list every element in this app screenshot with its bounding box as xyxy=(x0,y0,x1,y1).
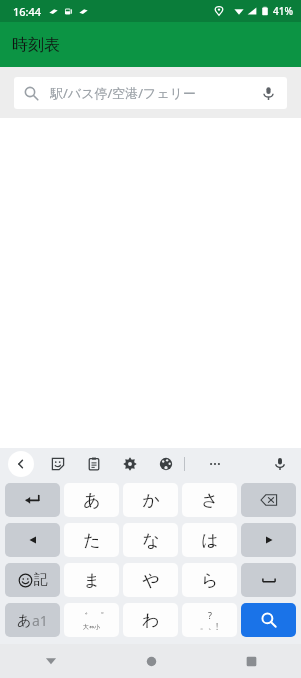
staticText: さ xyxy=(201,490,219,511)
button[interactable]: Clipboard xyxy=(82,452,106,476)
staticText: 。 xyxy=(200,621,208,631)
button[interactable]: Cursor right xyxy=(241,523,296,557)
staticText: わ xyxy=(142,610,160,631)
button[interactable]: Return xyxy=(5,483,60,517)
button[interactable]: Cursor left xyxy=(5,523,60,557)
button[interactable]: Voice search xyxy=(253,78,283,108)
staticText: や xyxy=(142,570,160,591)
button[interactable]: あ xyxy=(64,483,119,517)
staticText: ゜ xyxy=(94,610,105,623)
staticText: ! xyxy=(216,621,219,632)
staticText: 記 xyxy=(34,571,48,589)
button[interactable]: Backspace xyxy=(241,483,296,517)
button[interactable]: More options xyxy=(203,452,227,476)
button[interactable]: Voice input xyxy=(267,451,293,477)
button[interactable]: Themes xyxy=(154,452,178,476)
button[interactable]: た xyxy=(64,523,119,557)
button[interactable]: Hide keyboard xyxy=(0,644,101,678)
staticText: 16:44 xyxy=(13,4,42,19)
staticText: ら xyxy=(201,570,219,591)
staticText: 、 xyxy=(208,621,216,631)
staticText: ? xyxy=(208,609,212,621)
staticText: は xyxy=(201,530,219,551)
button[interactable]: か xyxy=(123,483,178,517)
button[interactable]: Space xyxy=(241,563,296,597)
staticText: ゛ xyxy=(78,610,89,623)
staticText: 時刻表 xyxy=(12,35,60,55)
button[interactable]: Emoji and symbols xyxy=(5,563,60,597)
button[interactable]: Punctuation xyxy=(182,603,237,637)
button[interactable]: Dakuten xyxy=(64,603,119,637)
staticText: た xyxy=(83,530,101,551)
staticText: 駅/バス停/空港/フェリー xyxy=(50,84,253,102)
button[interactable]: わ xyxy=(123,603,178,637)
button[interactable]: な xyxy=(123,523,178,557)
staticText: あ xyxy=(17,612,32,630)
button[interactable]: 駅/バス停/空港/フェリー xyxy=(14,77,287,109)
staticText: 41% xyxy=(273,4,293,18)
button[interactable]: Settings xyxy=(118,452,142,476)
button[interactable]: Search xyxy=(241,603,296,637)
button[interactable]: さ xyxy=(182,483,237,517)
button[interactable]: Back xyxy=(8,451,34,477)
button[interactable]: Recent apps xyxy=(201,644,301,678)
button[interactable]: や xyxy=(123,563,178,597)
button[interactable]: ら xyxy=(182,563,237,597)
button[interactable]: Home xyxy=(101,644,201,678)
button[interactable]: Switch input mode xyxy=(5,603,60,637)
button[interactable]: Stickers xyxy=(46,452,70,476)
button[interactable]: ま xyxy=(64,563,119,597)
button[interactable]: は xyxy=(182,523,237,557)
staticText: か xyxy=(142,490,160,511)
staticText: ま xyxy=(83,570,101,591)
staticText: あ xyxy=(83,490,101,511)
staticText: な xyxy=(142,530,160,551)
staticText: 大⇔小 xyxy=(83,623,101,631)
staticText: a1 xyxy=(32,611,48,630)
